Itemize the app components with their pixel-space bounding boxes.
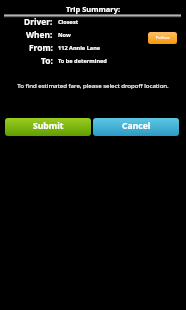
staticText: Follow (156, 35, 170, 41)
staticText: Submit (33, 120, 64, 132)
button[interactable]: To: (0, 54, 186, 67)
staticText: From: (29, 42, 53, 53)
staticText: Closest (58, 18, 79, 26)
button[interactable]: Driver: (0, 15, 186, 28)
button[interactable]: Cancel (93, 118, 179, 136)
staticText: Trip Summary: (0, 4, 186, 14)
staticText: Driver: (24, 16, 53, 27)
staticText: 112 Annie Lane (58, 44, 101, 52)
staticText: To: (41, 55, 53, 66)
button[interactable]: Submit (5, 118, 91, 136)
button[interactable]: When: (0, 28, 186, 41)
staticText: Cancel (122, 120, 151, 132)
button[interactable]: From: (0, 41, 186, 54)
staticText: To be determined (58, 57, 107, 65)
button[interactable]: Follow (148, 32, 177, 44)
staticText: To find estimated fare, please select dr… (0, 81, 186, 89)
staticText: Now (58, 31, 71, 39)
staticText: When: (26, 29, 53, 40)
